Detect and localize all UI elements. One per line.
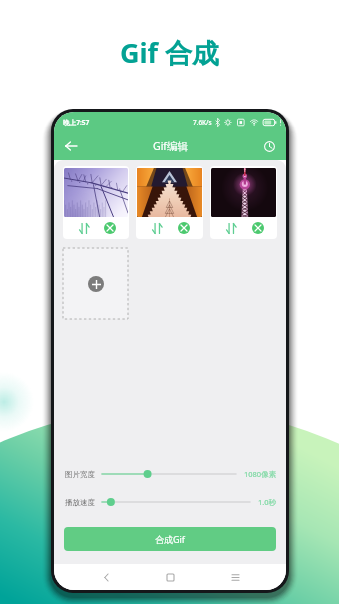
button[interactable]: Remove — [178, 222, 190, 234]
button[interactable]: Remove — [104, 222, 116, 234]
staticText: Gif编辑 — [153, 139, 188, 153]
button[interactable]: Reorder — [63, 166, 129, 239]
button[interactable]: Reorder — [149, 220, 165, 236]
button[interactable]: Home — [157, 564, 183, 590]
staticText: 合成Gif — [155, 533, 185, 545]
button[interactable]: Add image — [63, 248, 128, 319]
button[interactable]: Reorder — [76, 220, 92, 236]
button[interactable]: Reorder — [210, 166, 277, 239]
staticText: 7.6K/s — [193, 118, 212, 127]
staticText: 1.0秒 — [258, 497, 277, 507]
button[interactable]: Reorder — [223, 220, 239, 236]
button[interactable]: 合成Gif — [64, 527, 276, 551]
staticText: 晚上7:57 — [63, 118, 90, 127]
button[interactable]: Back — [93, 564, 119, 590]
staticText: 1080像素 — [244, 469, 277, 479]
staticText: 播放速度 — [65, 498, 95, 507]
button[interactable]: Back — [62, 137, 80, 155]
staticText: Gif 合成 — [120, 34, 220, 71]
button[interactable]: History — [260, 137, 278, 155]
button[interactable]: Recents — [222, 564, 248, 590]
staticText: 图片宽度 — [65, 470, 95, 479]
button[interactable]: Reorder — [136, 166, 203, 239]
button[interactable]: Remove — [252, 222, 264, 234]
